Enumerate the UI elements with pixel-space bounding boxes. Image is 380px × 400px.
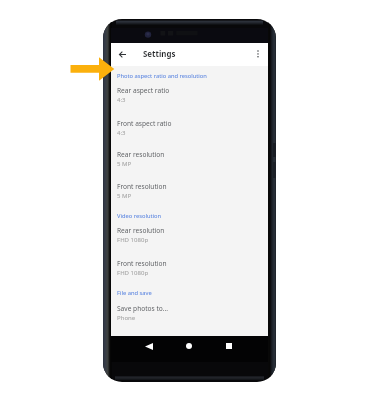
staticText: Front resolution [117, 259, 167, 268]
button[interactable]: More options [251, 48, 265, 62]
staticText: 5 MP [117, 192, 132, 200]
staticText: FHD 1080p [117, 236, 149, 244]
staticText: Video resolution [117, 212, 162, 220]
button[interactable]: Back [114, 46, 130, 62]
staticText: Rear resolution [117, 226, 165, 235]
button[interactable]: Front aspect ratio [111, 118, 268, 139]
staticText: Settings [143, 49, 176, 60]
staticText: Save photos to... [117, 304, 169, 313]
button[interactable]: Rear resolution [111, 149, 268, 170]
button[interactable]: Back [141, 338, 157, 354]
staticText: Front resolution [117, 182, 167, 191]
button[interactable]: Home [181, 338, 197, 354]
button[interactable]: Front resolution [111, 258, 268, 279]
staticText: Rear resolution [117, 150, 165, 159]
staticText: Phone [117, 314, 136, 322]
button[interactable]: Save photos to... [111, 303, 268, 324]
button[interactable]: Front resolution [111, 181, 268, 202]
button[interactable]: Rear resolution [111, 225, 268, 246]
staticText: Front aspect ratio [117, 119, 172, 128]
staticText: 5 MP [117, 160, 132, 168]
button[interactable]: Rear aspect ratio [111, 85, 268, 106]
button[interactable]: Recents [221, 338, 237, 354]
staticText: File and save [117, 289, 152, 297]
staticText: FHD 1080p [117, 269, 149, 277]
staticText: 4:3 [117, 129, 126, 137]
staticText: Photo aspect ratio and resolution [117, 72, 207, 80]
staticText: 4:3 [117, 96, 126, 104]
staticText: Rear aspect ratio [117, 86, 170, 95]
